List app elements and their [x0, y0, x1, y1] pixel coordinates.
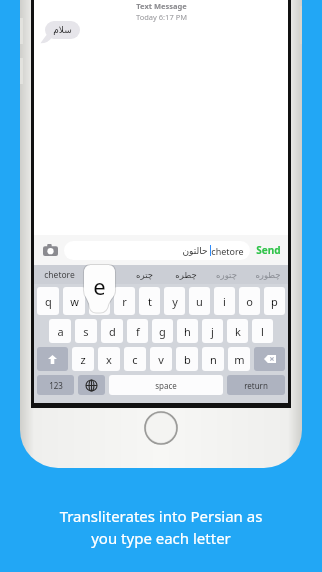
button[interactable]: چتره [124, 265, 165, 284]
staticText: r [122, 294, 127, 309]
staticText: u [196, 294, 203, 309]
staticText: i [223, 294, 226, 309]
staticText: p [271, 294, 278, 309]
staticText: e [93, 271, 106, 301]
staticText: m [234, 352, 245, 367]
button[interactable]: q [37, 287, 59, 315]
button[interactable]: w [63, 287, 85, 315]
button[interactable]: h [177, 319, 198, 343]
staticText: s [83, 324, 89, 339]
staticText: n [210, 352, 217, 367]
button[interactable]: l [252, 319, 273, 343]
staticText: chetore [44, 269, 75, 281]
staticText: d [109, 324, 116, 339]
button[interactable]: t [139, 287, 160, 315]
button[interactable]: Send [254, 243, 283, 257]
button[interactable]: Camera [39, 239, 61, 261]
staticText: Text Message [136, 1, 187, 11]
staticText: y [172, 294, 178, 309]
button[interactable]: s [75, 319, 97, 343]
button[interactable]: u [189, 287, 210, 315]
button[interactable]: f [127, 319, 148, 343]
staticText: w [70, 294, 79, 309]
button[interactable]: چ [84, 265, 124, 284]
button[interactable]: سلام [53, 25, 72, 35]
staticText: k [235, 324, 241, 339]
button[interactable]: m [228, 347, 250, 371]
button[interactable]: d [101, 319, 123, 343]
button[interactable]: b [176, 347, 198, 371]
staticText: b [184, 352, 191, 367]
button[interactable]: k [227, 319, 248, 343]
button[interactable]: c [124, 347, 146, 371]
button[interactable]: e [89, 287, 110, 315]
button[interactable]: n [202, 347, 224, 371]
staticText: f [136, 324, 140, 339]
staticText: چطوره [255, 270, 281, 280]
button[interactable]: p [264, 287, 285, 315]
staticText: x [106, 352, 112, 367]
button[interactable]: z [72, 347, 94, 371]
staticText: chetore [211, 245, 244, 257]
staticText: h [184, 324, 191, 339]
button[interactable]: y [164, 287, 185, 315]
button[interactable]: chetore [34, 265, 84, 284]
button[interactable]: Shift [37, 347, 68, 371]
button[interactable]: چطوره [247, 265, 288, 284]
button[interactable]: x [98, 347, 120, 371]
staticText: you type each letter [0, 528, 322, 548]
button[interactable]: r [114, 287, 135, 315]
button[interactable]: return [227, 375, 285, 395]
staticText: سلام [53, 25, 72, 35]
button[interactable]: i [214, 287, 235, 315]
button[interactable]: Backspace [254, 347, 285, 371]
staticText: v [158, 352, 164, 367]
staticText: z [80, 352, 86, 367]
staticText: space [155, 380, 177, 391]
button[interactable]: Switch keyboard [78, 375, 105, 395]
button[interactable]: v [150, 347, 172, 371]
button[interactable]: g [152, 319, 173, 343]
staticText: Transliterates into Persian as [0, 506, 322, 526]
staticText: q [45, 294, 52, 309]
button[interactable]: j [202, 319, 223, 343]
staticText: حالتون [182, 246, 208, 256]
staticText: g [159, 324, 166, 339]
staticText: چتره [136, 270, 153, 280]
staticText: o [246, 294, 253, 309]
button[interactable]: چتوره [206, 265, 247, 284]
staticText: 123 [49, 380, 63, 391]
staticText: c [132, 352, 138, 367]
button[interactable]: o [239, 287, 260, 315]
staticText: Send [256, 243, 281, 257]
staticText: t [148, 294, 152, 309]
button[interactable]: a [49, 319, 71, 343]
staticText: چطره [175, 270, 197, 280]
staticText: return [244, 380, 268, 391]
button[interactable]: حالتون [70, 241, 244, 260]
staticText: a [57, 324, 64, 339]
staticText: Today 6:17 PM [136, 12, 187, 22]
staticText: چتوره [216, 270, 237, 280]
button[interactable]: 123 [37, 375, 74, 395]
staticText: l [261, 324, 264, 339]
staticText: j [211, 324, 214, 339]
button[interactable]: چطره [165, 265, 206, 284]
button[interactable]: space [109, 375, 223, 395]
staticText: e [96, 294, 103, 309]
